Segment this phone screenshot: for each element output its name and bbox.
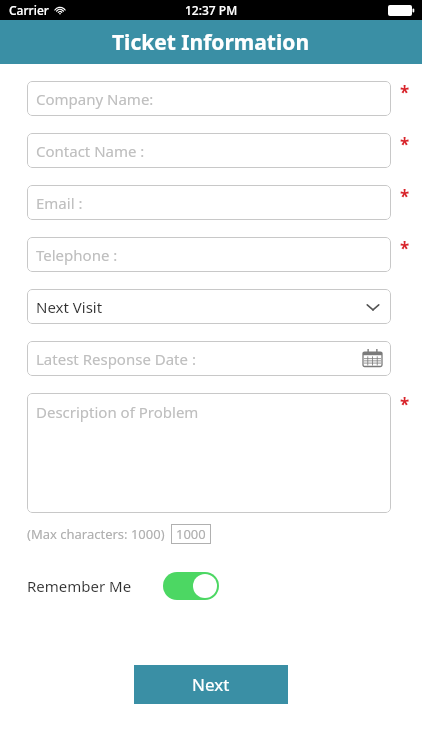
staticText: * xyxy=(400,185,410,208)
staticText: * xyxy=(400,237,410,260)
staticText: * xyxy=(400,133,410,156)
staticText: (Max characters: 1000) xyxy=(27,525,165,543)
staticText: Telephone : xyxy=(36,245,118,265)
staticText: 1000 xyxy=(176,525,206,543)
button[interactable]: Telephone : xyxy=(27,237,391,272)
staticText: Remember Me xyxy=(27,576,132,596)
button[interactable]: Email : xyxy=(27,185,391,220)
button[interactable]: Next Visit xyxy=(27,289,391,324)
button[interactable]: Ticket Information xyxy=(0,20,422,64)
staticText: Description of Problem xyxy=(36,402,199,422)
staticText: Ticket Information xyxy=(112,28,310,57)
other: Open dropdown xyxy=(364,298,382,316)
button[interactable]: Contact Name : xyxy=(27,133,391,168)
staticText: 12:37 PM xyxy=(185,2,238,18)
button[interactable]: Remember Me toggle xyxy=(163,572,219,600)
button[interactable]: Description of Problem xyxy=(27,393,391,513)
button[interactable]: Company Name: xyxy=(27,81,391,116)
staticText: * xyxy=(400,393,410,416)
staticText: Latest Response Date : xyxy=(36,349,196,369)
staticText: Company Name: xyxy=(36,89,154,109)
staticText: Next Visit xyxy=(36,297,103,317)
staticText: Contact Name : xyxy=(36,141,145,161)
button[interactable]: Next xyxy=(134,665,288,704)
staticText: Next xyxy=(192,673,230,696)
button[interactable]: Latest Response Date : xyxy=(27,341,391,376)
other: Pick date xyxy=(363,349,382,368)
staticText: * xyxy=(400,81,410,104)
staticText: Email : xyxy=(36,193,83,213)
staticText: Carrier xyxy=(9,2,49,18)
